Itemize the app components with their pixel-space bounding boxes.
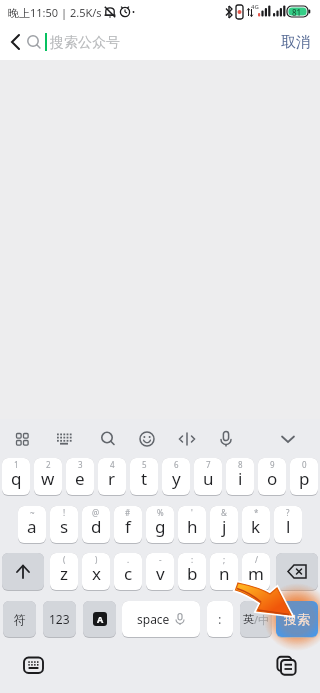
staticText: . xyxy=(127,554,130,565)
button[interactable]: 1 xyxy=(2,458,30,496)
staticText: i xyxy=(238,467,243,490)
button[interactable] xyxy=(45,419,90,458)
button[interactable] xyxy=(0,419,45,458)
button[interactable]: : xyxy=(207,601,233,638)
staticText: ? xyxy=(286,507,290,518)
button[interactable]: ( xyxy=(50,553,78,591)
staticText: q xyxy=(11,467,22,490)
button[interactable]: ; xyxy=(210,553,238,591)
staticText: /中 xyxy=(254,612,270,627)
staticText: 符 xyxy=(14,612,26,627)
button[interactable] xyxy=(90,419,136,458)
button[interactable]: 5 xyxy=(130,458,158,496)
button[interactable]: ' xyxy=(178,506,206,544)
staticText: ( xyxy=(63,554,66,565)
button[interactable]: 123 xyxy=(43,601,76,638)
button[interactable]: # xyxy=(114,506,142,544)
staticText: / xyxy=(255,554,258,565)
button[interactable]: 4 xyxy=(98,458,126,496)
staticText: 英 xyxy=(243,612,254,626)
button[interactable] xyxy=(0,24,28,60)
button[interactable]: ) xyxy=(82,553,110,591)
button[interactable] xyxy=(136,419,182,458)
staticText: s xyxy=(60,515,69,538)
button[interactable]: - xyxy=(146,553,174,591)
staticText: # xyxy=(125,507,131,518)
staticText: h xyxy=(187,515,198,538)
button[interactable]: 6 xyxy=(162,458,190,496)
button[interactable]: 3 xyxy=(66,458,94,496)
staticText: 2 xyxy=(46,459,51,470)
button[interactable] xyxy=(228,419,274,458)
staticText: o xyxy=(267,467,278,490)
button[interactable]: * xyxy=(242,506,270,544)
staticText: r xyxy=(108,467,116,490)
button[interactable]: @ xyxy=(82,506,110,544)
button[interactable]: 取消 xyxy=(281,33,311,52)
button[interactable]: ~ xyxy=(18,506,46,544)
staticText: f xyxy=(125,515,131,538)
staticText: z xyxy=(60,562,68,585)
staticText: l xyxy=(286,515,291,538)
staticText: 1 xyxy=(14,459,19,470)
button[interactable]: % xyxy=(146,506,174,544)
staticText: 7 xyxy=(206,459,211,470)
staticText: d xyxy=(91,515,102,538)
button[interactable] xyxy=(276,553,318,591)
staticText: A xyxy=(97,613,104,625)
staticText: * xyxy=(254,507,259,518)
staticText: b xyxy=(187,562,198,585)
staticText: e xyxy=(75,467,85,490)
staticText: v xyxy=(156,562,165,585)
staticText: % xyxy=(157,507,164,518)
staticText: w xyxy=(41,467,55,490)
staticText: 4 xyxy=(110,459,115,470)
staticText: @ xyxy=(92,507,100,518)
button[interactable]: 0 xyxy=(290,458,318,496)
staticText: ' xyxy=(191,507,193,518)
button[interactable] xyxy=(273,653,300,677)
staticText: - xyxy=(159,554,162,565)
button[interactable] xyxy=(274,419,320,458)
staticText: 搜索 xyxy=(284,611,310,627)
button[interactable]: & xyxy=(210,506,238,544)
button[interactable]: . xyxy=(114,553,142,591)
staticText: 搜索公众号 xyxy=(50,34,120,52)
staticText: ! xyxy=(63,507,66,518)
staticText: j xyxy=(222,515,227,538)
button[interactable]: A xyxy=(83,601,116,638)
staticText: space xyxy=(137,611,170,627)
staticText: 取消 xyxy=(281,33,311,52)
button[interactable]: 8 xyxy=(226,458,254,496)
button[interactable]: / xyxy=(242,553,270,591)
button[interactable]: 符 xyxy=(3,601,36,638)
staticText: u xyxy=(203,467,214,490)
button[interactable]: space xyxy=(122,601,200,638)
staticText: 6 xyxy=(174,459,179,470)
staticText: c xyxy=(124,562,133,585)
staticText: : xyxy=(218,610,222,628)
staticText: 4G xyxy=(251,3,259,11)
button[interactable]: 9 xyxy=(258,458,286,496)
button[interactable] xyxy=(2,553,44,591)
button[interactable]: 2 xyxy=(34,458,62,496)
button[interactable]: 搜索 xyxy=(276,601,318,638)
staticText: m xyxy=(248,562,264,585)
staticText: 9 xyxy=(270,459,275,470)
button[interactable]: 英 xyxy=(240,601,272,638)
staticText: k xyxy=(251,515,261,538)
button[interactable] xyxy=(21,654,47,676)
staticText: ) xyxy=(95,554,98,565)
staticText: 81 xyxy=(292,7,302,18)
staticText: t xyxy=(141,467,148,490)
button[interactable] xyxy=(182,419,228,458)
button[interactable]: ? xyxy=(274,506,302,544)
button[interactable]: : xyxy=(178,553,206,591)
button[interactable]: 7 xyxy=(194,458,222,496)
staticText: p xyxy=(299,467,310,490)
staticText: g xyxy=(155,515,166,538)
staticText: 0 xyxy=(302,459,307,470)
button[interactable]: ! xyxy=(50,506,78,544)
staticText: 晚上11:50 | 2.5K/s xyxy=(8,5,102,20)
staticText: y xyxy=(172,467,181,490)
